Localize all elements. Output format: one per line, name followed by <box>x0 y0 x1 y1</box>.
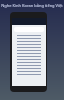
staticText: Nghe Kinh Koran bằng tiếng Việt <box>0 3 64 8</box>
